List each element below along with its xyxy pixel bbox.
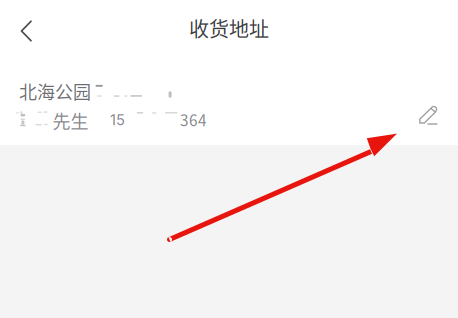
staticText: 364 [180, 108, 207, 131]
staticText: 收货地址 [189, 13, 269, 42]
button[interactable]: Back [0, 10, 48, 48]
button[interactable]: Edit address [406, 95, 450, 135]
staticText: 先生 [52, 107, 88, 134]
button[interactable]: 北海公园 [0, 58, 458, 145]
staticText: 北海公园 [19, 78, 91, 104]
staticText: 15 [110, 111, 125, 129]
